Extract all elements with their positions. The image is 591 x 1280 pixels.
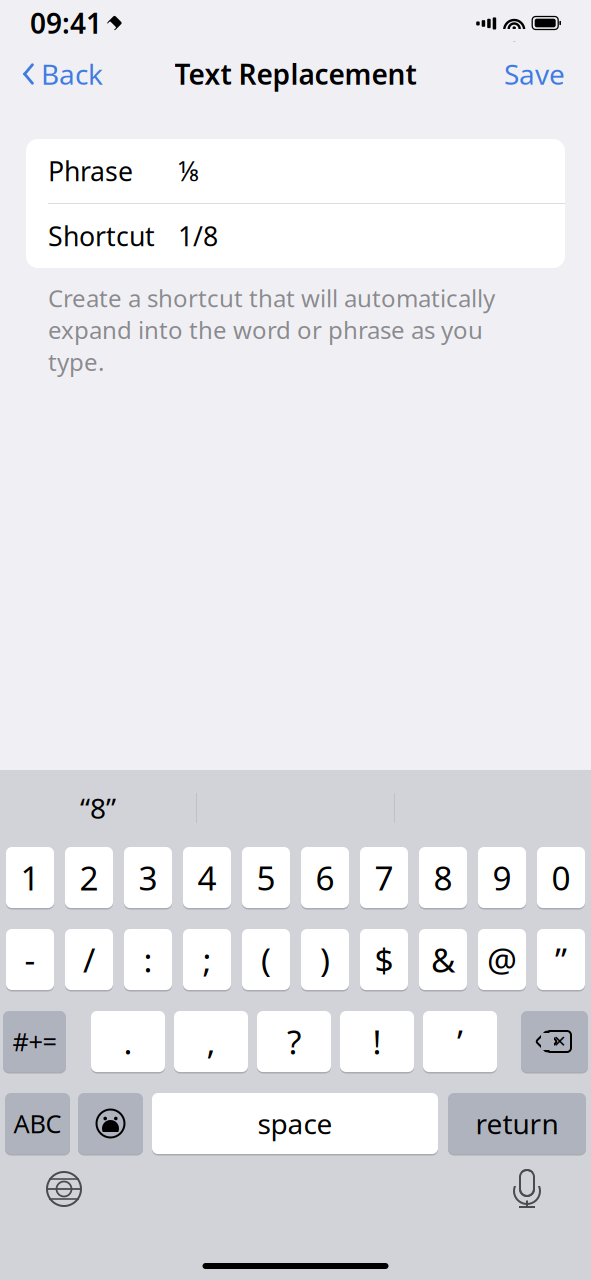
staticText: #+=	[12, 1025, 56, 1058]
staticText: &	[431, 937, 455, 982]
button[interactable]: 5	[242, 846, 290, 909]
button[interactable]: Delete	[521, 1010, 588, 1073]
staticText: Shortcut	[48, 218, 155, 254]
button[interactable]: 7	[360, 846, 408, 909]
button[interactable]: Phrase	[26, 139, 565, 203]
staticText: 09:41	[30, 4, 102, 42]
staticText: @	[487, 937, 517, 982]
button[interactable]: )	[301, 928, 349, 991]
staticText: 4	[197, 855, 216, 900]
staticText: space	[257, 1105, 332, 1142]
staticText: ;	[202, 937, 211, 982]
staticText: .	[123, 1019, 132, 1064]
button[interactable]: ;	[183, 928, 231, 991]
button[interactable]: ”	[537, 928, 585, 991]
button[interactable]: .	[91, 1010, 165, 1073]
staticText: /	[83, 937, 95, 982]
button[interactable]: 2	[65, 846, 113, 909]
button[interactable]: Next keyboard	[34, 1163, 94, 1215]
button[interactable]: 9	[478, 846, 526, 909]
button[interactable]: /	[65, 928, 113, 991]
staticText: Back	[41, 55, 103, 93]
staticText: ?	[287, 1019, 301, 1064]
staticText: :	[143, 937, 152, 982]
button[interactable]: 0	[537, 846, 585, 909]
staticText: 1/8	[178, 218, 218, 254]
button[interactable]: Shortcut	[26, 204, 565, 268]
staticText: )	[320, 937, 330, 982]
button[interactable]: “8”	[0, 784, 196, 832]
button[interactable]: Emoji	[78, 1092, 143, 1155]
staticText: ’	[457, 1019, 463, 1064]
button[interactable]: ’	[423, 1010, 497, 1073]
staticText: Create a shortcut that will automaticall…	[48, 282, 495, 378]
button[interactable]: space	[152, 1092, 438, 1155]
staticText: 1	[20, 855, 39, 900]
staticText: -	[24, 937, 35, 982]
button[interactable]: $	[360, 928, 408, 991]
staticText: 3	[138, 855, 157, 900]
staticText: 2	[79, 855, 98, 900]
staticText: ✕	[553, 1032, 566, 1051]
staticText: ⅛	[178, 153, 200, 189]
button[interactable]: @	[478, 928, 526, 991]
staticText: ”	[555, 937, 567, 982]
button[interactable]: !	[340, 1010, 414, 1073]
button[interactable]: return	[448, 1092, 586, 1155]
staticText: return	[475, 1105, 558, 1142]
button[interactable]: -	[6, 928, 54, 991]
button[interactable]: ,	[174, 1010, 248, 1073]
button[interactable]: Back	[6, 50, 119, 98]
button[interactable]: :	[124, 928, 172, 991]
button[interactable]: &	[419, 928, 467, 991]
button[interactable]: #+=	[3, 1010, 66, 1073]
staticText: $	[374, 937, 393, 982]
button[interactable]: (	[242, 928, 290, 991]
staticText: !	[372, 1019, 381, 1064]
staticText: ,	[206, 1019, 215, 1064]
staticText: 5	[256, 855, 275, 900]
staticText: 7	[374, 855, 393, 900]
button[interactable]: 4	[183, 846, 231, 909]
staticText: 0	[551, 855, 570, 900]
staticText: 6	[315, 855, 334, 900]
staticText: (	[261, 937, 271, 982]
button[interactable]: 3	[124, 846, 172, 909]
button[interactable]: Save	[484, 50, 585, 98]
staticText: Save	[504, 55, 565, 93]
staticText: Phrase	[48, 153, 133, 189]
button[interactable]: ABC	[5, 1092, 70, 1155]
button[interactable]: 8	[419, 846, 467, 909]
staticText: ABC	[13, 1107, 61, 1140]
button[interactable]: ?	[257, 1010, 331, 1073]
staticText: 9	[492, 855, 511, 900]
button[interactable]: Dictate	[497, 1163, 557, 1215]
staticText: Text Replacement	[174, 55, 416, 93]
staticText: “8”	[80, 789, 116, 827]
button[interactable]: 6	[301, 846, 349, 909]
button[interactable]: 1	[6, 846, 54, 909]
staticText: 8	[433, 855, 452, 900]
